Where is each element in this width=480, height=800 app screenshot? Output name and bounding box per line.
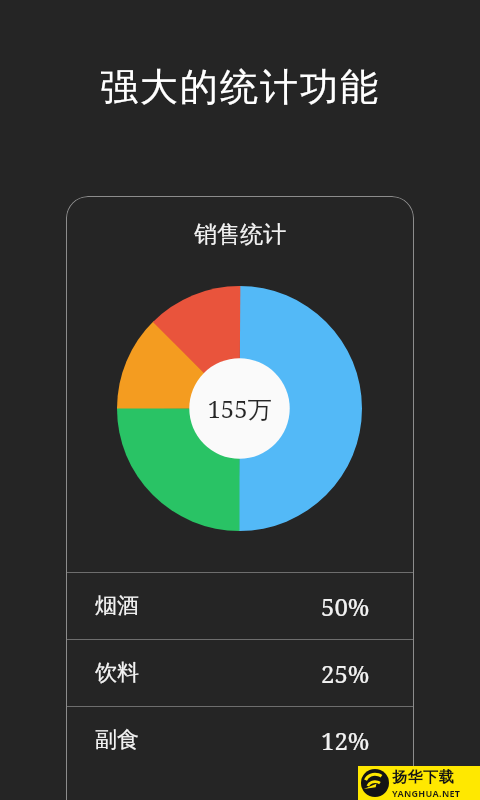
staticText: 销售统计 [66,220,414,249]
staticText: 155万 [207,392,272,425]
button[interactable]: 饮料 [66,640,414,706]
staticText: YANGHUA.NET [392,787,461,799]
staticText: 扬华下载 [392,768,454,787]
staticText: 强大的统计功能 [0,63,480,111]
staticText: 25% [321,657,370,690]
button[interactable]: 烟酒 [66,573,414,639]
button[interactable]: 扬华下载 YANGHUA.NET [358,766,480,800]
staticText: 烟酒 [95,592,139,620]
staticText: 副食 [95,726,139,754]
staticText: 50% [321,590,370,623]
staticText: 饮料 [95,659,139,687]
staticText: 12% [321,724,370,757]
button[interactable]: 销售统计 [66,196,414,800]
button[interactable]: 副食 [66,707,414,773]
